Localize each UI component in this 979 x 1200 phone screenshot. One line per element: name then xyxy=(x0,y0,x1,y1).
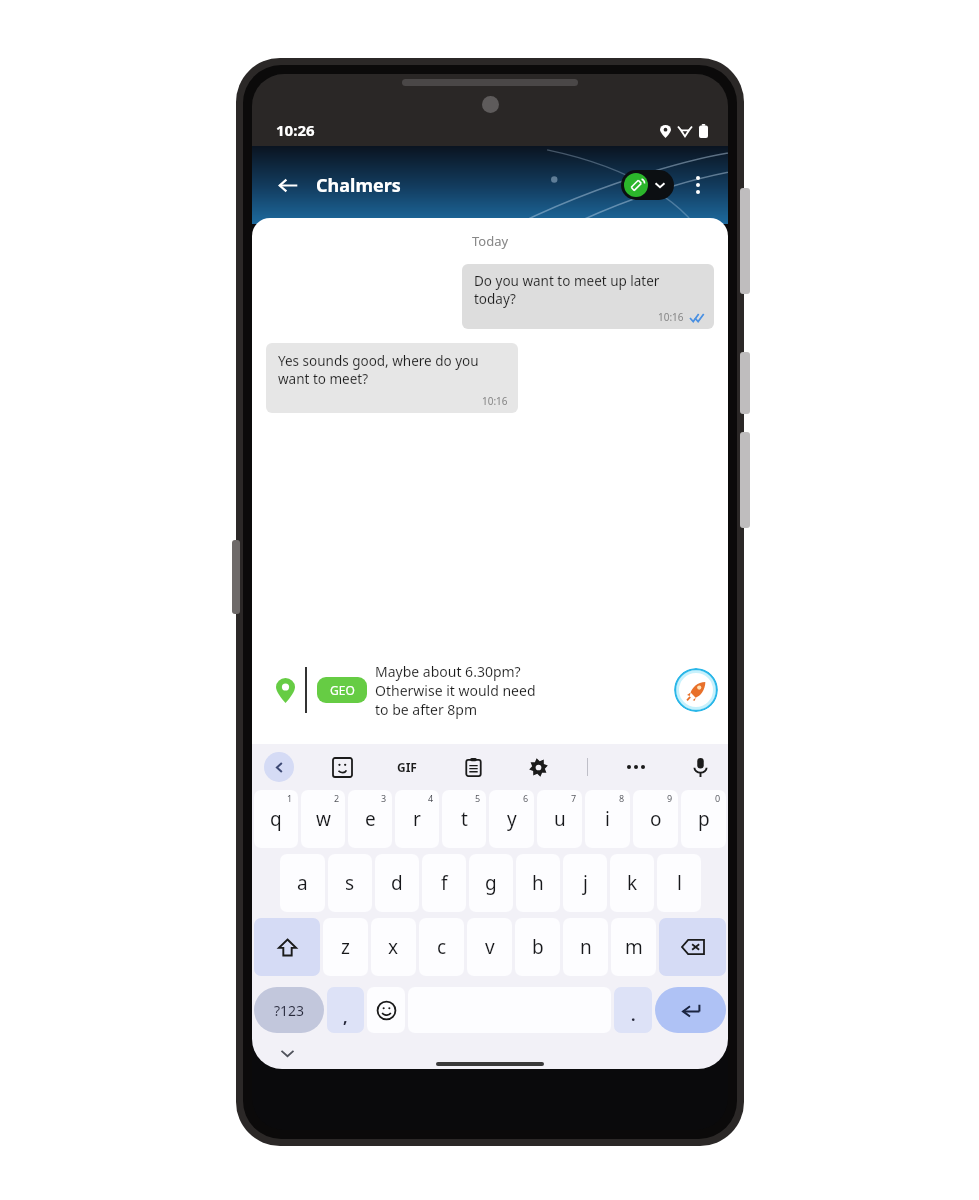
staticText: ?123 xyxy=(274,1001,305,1020)
button[interactable]: GEO xyxy=(317,677,367,703)
button[interactable]: Back xyxy=(264,752,294,782)
staticText: 10:26 xyxy=(276,120,315,140)
button[interactable]: d xyxy=(375,854,419,912)
button[interactable]: h xyxy=(516,854,560,912)
button[interactable]: t xyxy=(442,790,486,848)
staticText: p xyxy=(698,806,710,832)
button[interactable]: More xyxy=(621,752,651,782)
button[interactable]: c xyxy=(419,918,464,976)
button[interactable]: GEO xyxy=(264,647,666,733)
button[interactable]: More options xyxy=(682,169,714,201)
staticText: 5 xyxy=(475,792,481,804)
staticText: Do you want to meet up later today? xyxy=(474,272,704,308)
button[interactable]: y xyxy=(489,790,534,848)
button[interactable]: l xyxy=(657,854,701,912)
staticText: t xyxy=(461,806,468,832)
staticText: , xyxy=(343,1006,348,1028)
staticText: k xyxy=(627,870,638,896)
button[interactable]: Back xyxy=(270,167,306,203)
button[interactable]: Clipboard xyxy=(457,751,489,783)
staticText: Chalmers xyxy=(316,173,401,198)
button[interactable]: Settings xyxy=(522,751,554,783)
button[interactable]: a xyxy=(280,854,325,912)
button[interactable]: n xyxy=(563,918,608,976)
staticText: Yes sounds good, where do you want to me… xyxy=(278,352,479,388)
staticText: 8 xyxy=(619,792,625,804)
staticText: v xyxy=(485,934,495,960)
button[interactable]: j xyxy=(563,854,607,912)
staticText: 3 xyxy=(381,792,387,804)
staticText: 9 xyxy=(667,792,673,804)
button[interactable]: Yes sounds good, where do you want to me… xyxy=(266,343,518,413)
staticText: GIF xyxy=(397,759,417,775)
staticText: m xyxy=(625,934,643,960)
staticText: j xyxy=(583,870,588,896)
staticText: h xyxy=(532,870,544,896)
button[interactable]: s xyxy=(328,854,372,912)
button[interactable]: Send xyxy=(674,668,718,712)
button[interactable]: GIF xyxy=(390,750,424,784)
staticText: r xyxy=(413,806,421,832)
button[interactable]: ?123 xyxy=(254,987,324,1033)
staticText: 2 xyxy=(334,792,340,804)
staticText: u xyxy=(554,806,566,832)
button[interactable]: f xyxy=(422,854,466,912)
button[interactable]: q xyxy=(254,790,298,848)
button[interactable]: . xyxy=(614,987,652,1033)
button[interactable]: v xyxy=(467,918,512,976)
staticText: Maybe about 6.30pm? Otherwise it would n… xyxy=(375,662,536,719)
staticText: . xyxy=(631,1004,636,1026)
button[interactable]: r xyxy=(395,790,439,848)
button[interactable]: g xyxy=(469,854,513,912)
staticText: b xyxy=(532,934,544,960)
staticText: i xyxy=(605,806,610,832)
button[interactable]: Satellite connection xyxy=(621,170,674,200)
staticText: f xyxy=(441,870,448,896)
staticText: 1 xyxy=(287,792,293,804)
staticText: x xyxy=(388,934,399,960)
button[interactable]: Sticker xyxy=(326,751,358,783)
staticText: q xyxy=(270,806,282,832)
button[interactable]: m xyxy=(611,918,656,976)
button[interactable]: Emoji xyxy=(367,987,405,1033)
staticText: d xyxy=(391,870,403,896)
button[interactable]: Voice input xyxy=(684,751,716,783)
button[interactable]: w xyxy=(301,790,345,848)
button[interactable]: Do you want to meet up later today? xyxy=(462,264,714,329)
button[interactable]: Backspace xyxy=(659,918,726,976)
staticText: y xyxy=(507,806,517,832)
staticText: 10:16 xyxy=(482,394,508,408)
staticText: 10:16 xyxy=(658,310,684,324)
staticText: o xyxy=(650,806,662,832)
staticText: 4 xyxy=(428,792,434,804)
staticText: 6 xyxy=(523,792,529,804)
button[interactable]: e xyxy=(348,790,392,848)
button[interactable]: Enter xyxy=(655,987,726,1033)
button[interactable]: p xyxy=(681,790,726,848)
staticText: Today xyxy=(472,232,509,250)
button[interactable]: b xyxy=(515,918,560,976)
staticText: 0 xyxy=(715,792,721,804)
staticText: a xyxy=(297,870,308,896)
button[interactable]: i xyxy=(585,790,630,848)
button[interactable]: u xyxy=(537,790,582,848)
button[interactable]: k xyxy=(610,854,654,912)
button[interactable]: z xyxy=(323,918,368,976)
staticText: w xyxy=(316,806,331,832)
staticText: e xyxy=(365,806,376,832)
staticText: s xyxy=(345,870,355,896)
button[interactable]: x xyxy=(371,918,416,976)
staticText: z xyxy=(341,934,350,960)
staticText: 7 xyxy=(571,792,577,804)
staticText: c xyxy=(437,934,447,960)
button[interactable]: Shift xyxy=(254,918,320,976)
button[interactable]: , xyxy=(327,987,364,1033)
staticText: n xyxy=(580,934,592,960)
staticText: l xyxy=(677,870,682,896)
staticText: GEO xyxy=(330,682,355,698)
button[interactable]: o xyxy=(633,790,678,848)
staticText: g xyxy=(485,870,497,896)
